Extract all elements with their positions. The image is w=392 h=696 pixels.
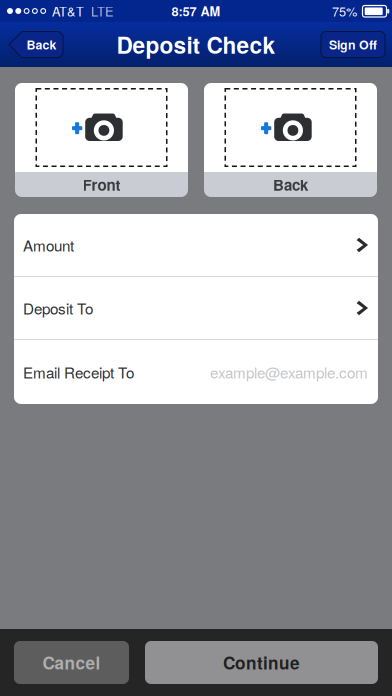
button[interactable]: Sign Off bbox=[321, 31, 385, 57]
staticText: Front bbox=[82, 174, 120, 195]
staticText: example@example.com bbox=[210, 361, 368, 383]
staticText: Back bbox=[26, 36, 56, 53]
button[interactable]: Amount bbox=[14, 214, 378, 276]
button[interactable]: Front bbox=[15, 83, 188, 197]
staticText: Sign Off bbox=[329, 36, 377, 53]
staticText: Continue bbox=[223, 650, 300, 675]
staticText: Deposit To bbox=[23, 297, 93, 319]
staticText: 8:57 AM bbox=[171, 2, 220, 20]
button[interactable]: Back bbox=[9, 31, 63, 57]
staticText: Back bbox=[273, 174, 308, 195]
staticText: LTE bbox=[91, 2, 114, 20]
button[interactable]: Back bbox=[204, 83, 377, 197]
staticText: Deposit Check bbox=[116, 28, 275, 61]
button[interactable]: Continue bbox=[145, 641, 378, 684]
button[interactable]: Email Receipt To bbox=[14, 340, 378, 404]
staticText: AT&T bbox=[52, 2, 84, 20]
staticText: Amount bbox=[23, 234, 74, 256]
button[interactable]: Deposit To bbox=[14, 277, 378, 339]
staticText: Email Receipt To bbox=[23, 361, 134, 383]
button[interactable]: Cancel bbox=[14, 641, 129, 684]
staticText: Cancel bbox=[42, 650, 100, 675]
staticText: 75% bbox=[332, 2, 357, 20]
